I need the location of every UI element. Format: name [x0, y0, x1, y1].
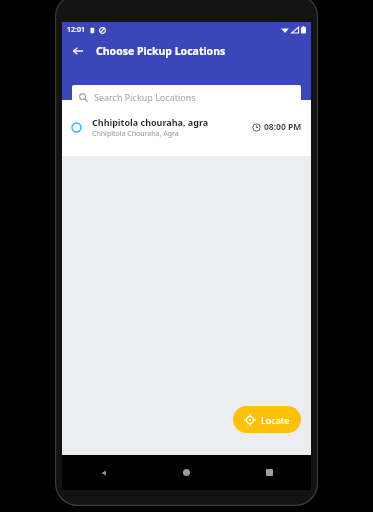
button[interactable]: Home [145, 455, 228, 490]
button[interactable]: Chhipitola chouraha, agra [62, 112, 311, 142]
button[interactable]: Search Pickup Locations [72, 85, 301, 109]
staticText: Search Pickup Locations [94, 91, 196, 103]
staticText: Chhipitola chouraha, agra [92, 116, 209, 128]
staticText: Choose Pickup Locations [96, 44, 226, 58]
button[interactable]: Back [68, 41, 88, 61]
staticText: Chhipitola Chouraha, Agra [92, 129, 179, 139]
button[interactable]: Back [62, 455, 145, 490]
staticText: 08:00 PM [264, 121, 302, 133]
button[interactable]: Recent apps [228, 455, 311, 490]
staticText: 12:01 [67, 25, 85, 35]
staticText: Locate [261, 414, 290, 426]
button[interactable]: Locate [233, 406, 301, 433]
